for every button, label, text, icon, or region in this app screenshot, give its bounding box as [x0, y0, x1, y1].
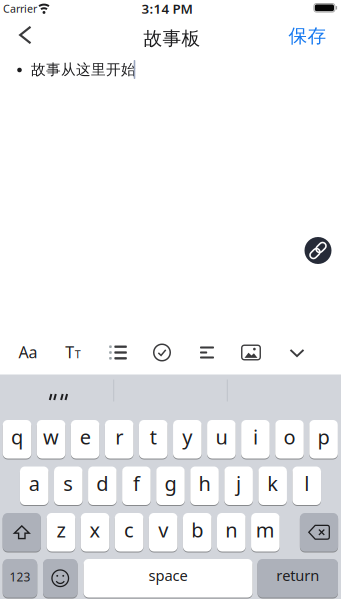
- button[interactable]: [189, 335, 225, 369]
- staticText: c: [124, 516, 134, 543]
- staticText: o: [283, 423, 295, 450]
- button[interactable]: y: [173, 419, 202, 459]
- button[interactable]: b: [183, 512, 211, 552]
- staticText: q: [11, 423, 23, 450]
- button[interactable]: v: [149, 512, 177, 552]
- button[interactable]: c: [115, 512, 143, 552]
- staticText: d: [96, 470, 108, 497]
- staticText: e: [80, 423, 91, 450]
- button[interactable]: [300, 512, 338, 552]
- button[interactable]: p: [309, 419, 338, 459]
- staticText: return: [276, 565, 319, 585]
- staticText: f: [133, 470, 140, 497]
- staticText: g: [164, 470, 176, 497]
- button[interactable]: [233, 335, 269, 369]
- staticText: space: [149, 565, 188, 585]
- button[interactable]: u: [207, 419, 236, 459]
- button[interactable]: l: [292, 466, 321, 505]
- button[interactable]: j: [224, 466, 253, 505]
- staticText: j: [236, 470, 241, 497]
- staticText: y: [182, 423, 192, 450]
- button[interactable]: [303, 235, 333, 265]
- staticText: z: [56, 516, 65, 543]
- button[interactable]: h: [190, 466, 219, 505]
- staticText: x: [90, 516, 101, 543]
- staticText: 故事从这里开始: [31, 60, 136, 78]
- staticText: i: [253, 423, 258, 450]
- button[interactable]: Aa: [10, 335, 46, 369]
- button[interactable]: w: [37, 419, 65, 459]
- staticText: l: [304, 470, 309, 497]
- staticText: h: [199, 470, 211, 497]
- button[interactable]: i: [241, 419, 270, 459]
- staticText: k: [267, 470, 278, 497]
- button[interactable]: [3, 512, 41, 552]
- staticText: 故事板: [143, 27, 200, 50]
- staticText: m: [256, 516, 275, 543]
- staticText: v: [158, 516, 168, 543]
- button[interactable]: z: [47, 512, 75, 552]
- button[interactable]: return: [257, 558, 338, 598]
- button[interactable]: [279, 336, 315, 370]
- button[interactable]: e: [71, 419, 99, 459]
- button[interactable]: o: [275, 419, 304, 459]
- staticText: w: [43, 423, 59, 450]
- staticText: u: [215, 423, 227, 450]
- staticText: Carrier: [3, 1, 37, 16]
- staticText: 123: [9, 569, 30, 585]
- staticText: a: [29, 470, 40, 497]
- button[interactable]: 123: [3, 558, 37, 598]
- button[interactable]: r: [105, 419, 133, 459]
- staticText: Aa: [18, 341, 37, 363]
- button[interactable]: g: [156, 466, 185, 505]
- button[interactable]: q: [3, 419, 31, 459]
- staticText: p: [318, 423, 330, 450]
- staticText: n: [225, 516, 237, 543]
- button[interactable]: f: [122, 466, 151, 505]
- staticText: b: [191, 516, 203, 543]
- button[interactable]: m: [251, 512, 280, 552]
- staticText: r: [115, 423, 123, 450]
- staticText: T: [75, 347, 81, 361]
- staticText: 保存: [288, 24, 326, 47]
- button[interactable]: d: [88, 466, 117, 505]
- button[interactable]: [100, 335, 136, 369]
- button[interactable]: T: [55, 335, 91, 369]
- button[interactable]: space: [84, 558, 253, 598]
- staticText: t: [150, 423, 157, 450]
- button[interactable]: [144, 335, 180, 369]
- button[interactable]: k: [258, 466, 287, 505]
- button[interactable]: t: [139, 419, 168, 459]
- staticText: s: [63, 470, 73, 497]
- button[interactable]: a: [20, 466, 48, 505]
- button[interactable]: s: [54, 466, 83, 505]
- button[interactable]: [7, 18, 43, 52]
- button[interactable]: 保存: [282, 19, 332, 53]
- staticText: 3:14 PM: [141, 0, 192, 17]
- staticText: T: [65, 341, 74, 363]
- button[interactable]: [7, 382, 107, 412]
- button[interactable]: x: [81, 512, 109, 552]
- button[interactable]: n: [217, 512, 246, 552]
- button[interactable]: [43, 558, 77, 598]
